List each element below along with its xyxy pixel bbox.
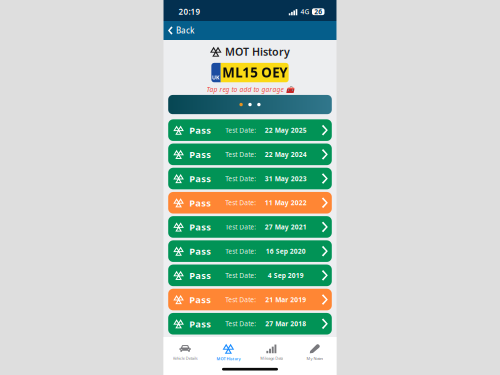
staticText: Test Date: <box>225 295 256 304</box>
button[interactable]: Pass <box>168 119 332 141</box>
staticText: Pass <box>189 148 211 161</box>
staticText: 20:19 <box>178 6 200 17</box>
button[interactable]: Back <box>163 21 201 40</box>
staticText: Pass <box>189 269 211 282</box>
staticText: 4G <box>300 7 309 16</box>
staticText: MOT History <box>225 45 290 59</box>
staticText: 16 Sep 2020 <box>266 247 306 256</box>
staticText: Pass <box>189 172 211 185</box>
button[interactable]: Pass <box>168 144 332 165</box>
button[interactable]: Promotion <box>168 95 332 114</box>
staticText: Tap reg to add to garage 🧰 <box>206 85 293 94</box>
staticText: Test Date: <box>225 150 256 159</box>
button[interactable]: My Notes <box>293 341 336 364</box>
button[interactable]: Pass <box>168 192 332 214</box>
staticText: Pass <box>189 318 211 330</box>
staticText: Test Date: <box>225 126 256 135</box>
button[interactable]: Pass <box>168 289 332 310</box>
staticText: Pass <box>189 245 211 257</box>
staticText: Pass <box>189 124 211 136</box>
staticText: Pass <box>189 221 211 233</box>
button[interactable]: Pass <box>168 216 332 238</box>
button[interactable]: MOT History <box>207 341 250 364</box>
staticText: Test Date: <box>225 174 256 183</box>
button[interactable]: Pass <box>168 168 332 189</box>
button[interactable]: Mileage Data <box>250 341 293 364</box>
button[interactable]: UK <box>211 63 289 82</box>
button[interactable]: Pass <box>168 240 332 262</box>
staticText: Back <box>176 25 194 36</box>
staticText: Test Date: <box>225 198 256 207</box>
staticText: MOT History <box>216 356 240 361</box>
staticText: Pass <box>189 293 211 306</box>
staticText: 31 May 2023 <box>265 174 307 183</box>
staticText: 22 May 2024 <box>265 150 307 159</box>
button[interactable]: Pass <box>168 313 332 335</box>
staticText: Test Date: <box>225 319 256 328</box>
staticText: 27 May 2021 <box>265 222 307 231</box>
staticText: 11 May 2022 <box>265 198 307 207</box>
button[interactable]: Vehicle Details <box>163 341 207 364</box>
staticText: 26 <box>314 7 322 16</box>
staticText: 22 May 2025 <box>265 126 307 135</box>
staticText: Test Date: <box>225 247 256 256</box>
staticText: UK <box>212 74 220 81</box>
staticText: 4 Sep 2019 <box>268 271 304 280</box>
staticText: ML15 OEY <box>222 63 287 81</box>
staticText: 21 Mar 2019 <box>265 295 306 304</box>
staticText: 27 Mar 2018 <box>265 319 306 328</box>
staticText: My Notes <box>306 356 323 361</box>
staticText: Vehicle Details <box>173 356 198 361</box>
staticText: Test Date: <box>225 271 256 280</box>
staticText: Mileage Data <box>260 356 283 361</box>
staticText: Pass <box>189 197 211 209</box>
button[interactable]: Pass <box>168 265 332 286</box>
staticText: Test Date: <box>225 222 256 231</box>
